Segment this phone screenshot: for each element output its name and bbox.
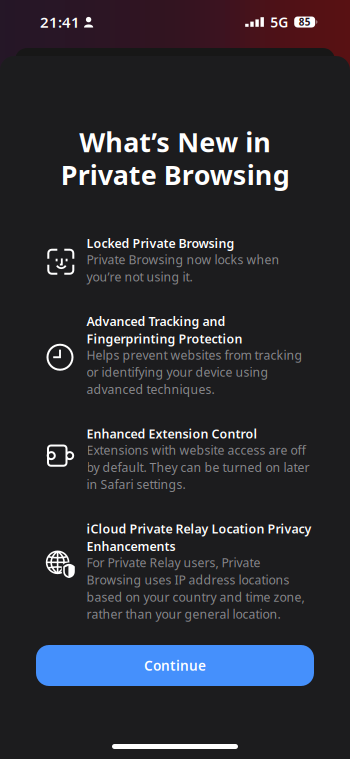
staticText: Locked Private Browsing — [86, 235, 234, 251]
staticText: 85 — [299, 15, 311, 28]
staticText: 5G — [270, 13, 288, 31]
staticText: What’s New in Private Browsing — [60, 124, 289, 192]
button[interactable]: Continue — [36, 645, 314, 686]
staticText: Continue — [144, 656, 206, 675]
staticText: Enhanced Extension Control — [86, 425, 257, 442]
staticText: Extensions with website access are off b… — [86, 442, 309, 492]
staticText: Advanced Tracking and Fingerprinting Pro… — [86, 313, 242, 347]
staticText: 21:41 — [40, 12, 80, 32]
staticText: iCloud Private Relay Location Privacy En… — [86, 520, 311, 554]
staticText: Helps prevent websites from tracking or … — [86, 347, 302, 397]
staticText: Private Browsing now locks when you’re n… — [86, 251, 279, 285]
staticText: For Private Relay users, Private Browsin… — [86, 554, 304, 622]
